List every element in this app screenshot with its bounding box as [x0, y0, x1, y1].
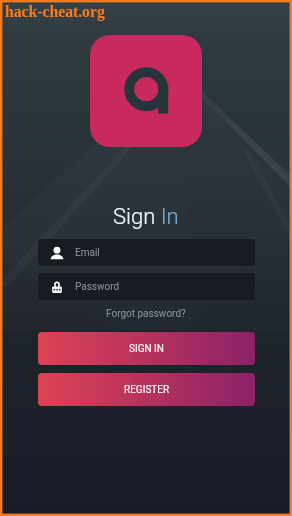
button[interactable]: Password	[38, 273, 255, 300]
staticText: SIGN IN	[129, 343, 164, 355]
other: App logo	[90, 35, 202, 147]
staticText: Email	[75, 247, 100, 259]
staticText: REGISTER	[124, 384, 170, 396]
button[interactable]: Forgot password?	[100, 306, 192, 322]
staticText: Password	[75, 281, 120, 293]
button[interactable]: Email	[38, 239, 255, 266]
staticText: Sign In	[113, 204, 179, 230]
staticText: Forgot password?	[106, 308, 186, 320]
button[interactable]: SIGN IN	[38, 332, 255, 365]
staticText: hack-cheat.org	[5, 3, 105, 20]
button[interactable]: REGISTER	[38, 373, 255, 406]
